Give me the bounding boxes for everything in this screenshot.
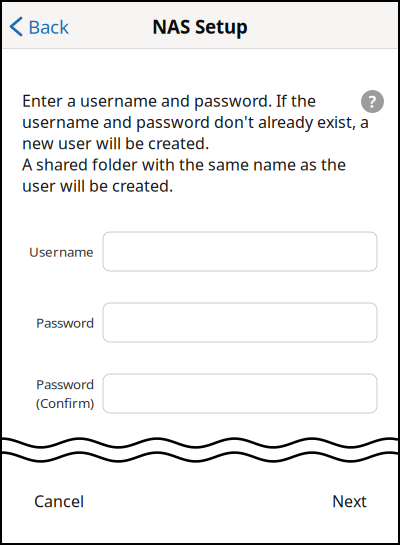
- button[interactable]: Back: [2, 2, 81, 48]
- staticText: NAS Setup: [152, 14, 248, 39]
- staticText: Password: [36, 375, 94, 393]
- staticText: Username: [29, 243, 94, 260]
- staticText: Cancel: [34, 490, 84, 512]
- button[interactable]: Cancel: [21, 477, 97, 525]
- staticText: ?: [368, 91, 376, 112]
- staticText: Back: [28, 14, 69, 39]
- button[interactable]: Next: [319, 477, 380, 525]
- staticText: Password: [36, 314, 94, 331]
- button[interactable]: Help: [357, 86, 388, 117]
- staticText: (Confirm): [36, 394, 94, 412]
- staticText: Enter a username and password. If the us…: [22, 90, 369, 196]
- staticText: Next: [332, 490, 367, 512]
